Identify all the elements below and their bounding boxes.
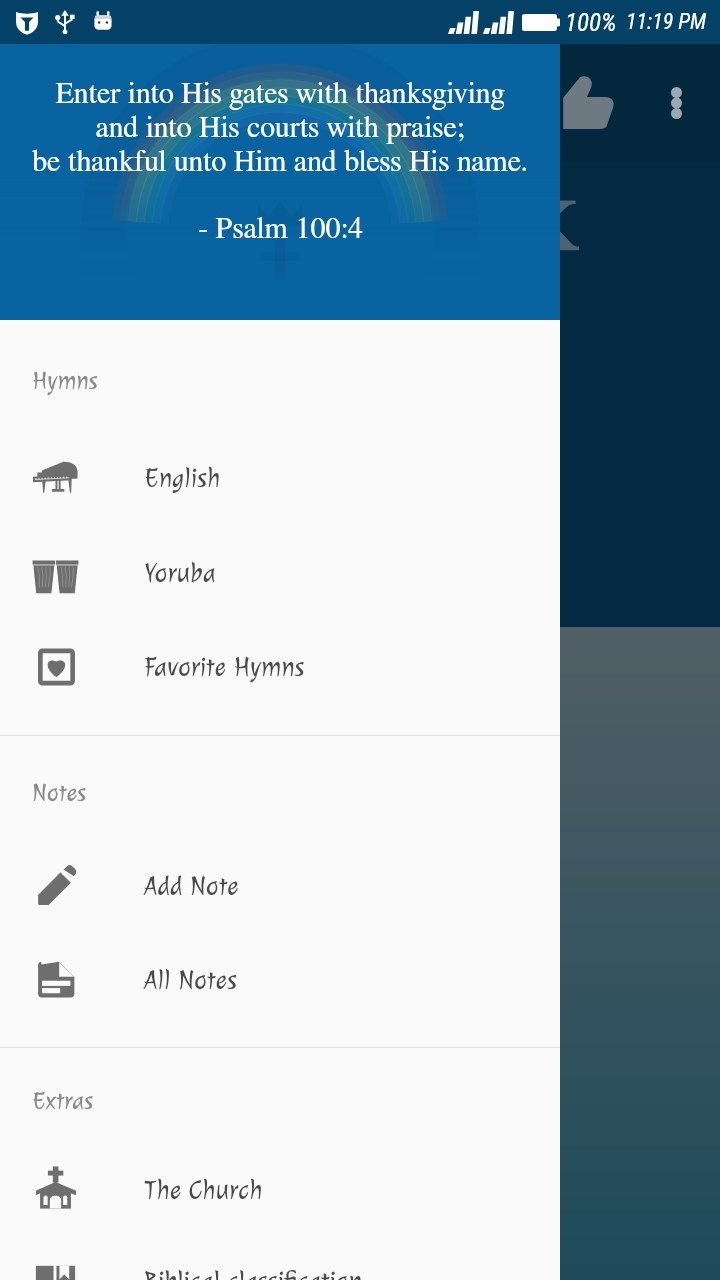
staticText: Notes	[32, 778, 87, 807]
staticText: Biblical classification	[144, 1265, 362, 1280]
staticText: Yoruba	[144, 557, 216, 589]
staticText: Hymns	[32, 366, 98, 395]
staticText: Extras	[32, 1086, 94, 1115]
staticText: Favorite Hymns	[144, 651, 305, 683]
button[interactable]: Favorite Hymns	[0, 620, 560, 714]
staticText: Add Note	[144, 870, 239, 902]
button[interactable]: Biblical classification	[0, 1237, 560, 1280]
staticText: Enter into His gates with thanksgiving a…	[32, 79, 528, 177]
staticText: HYMN BOOK	[142, 191, 579, 263]
button[interactable]: Add Note	[0, 839, 560, 933]
staticText: 11:19 PM	[626, 9, 707, 35]
staticText: 100%	[565, 8, 617, 37]
staticText: - Psalm 100:4	[198, 214, 363, 244]
button[interactable]: More options	[645, 72, 707, 134]
staticText: All Notes	[144, 964, 237, 996]
button[interactable]: Like	[538, 59, 622, 143]
staticText: The Church	[144, 1174, 263, 1206]
button[interactable]: The Church	[0, 1142, 560, 1237]
button[interactable]: All Notes	[0, 933, 560, 1027]
staticText: English	[144, 462, 221, 494]
button[interactable]: Yoruba	[0, 525, 560, 620]
button[interactable]: English	[0, 431, 560, 525]
